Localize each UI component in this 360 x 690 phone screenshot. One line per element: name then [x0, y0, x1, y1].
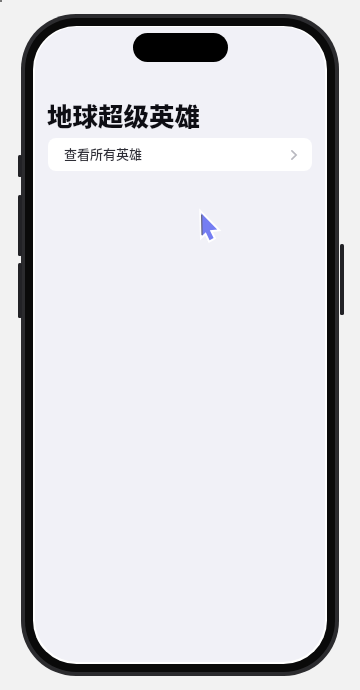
other: Action button [18, 155, 22, 177]
other: Volume up [18, 195, 22, 256]
staticText: 查看所有英雄 [64, 144, 291, 163]
other: Power [340, 244, 344, 315]
staticText: 地球超级英雄 [47, 96, 201, 133]
button[interactable]: 查看所有英雄 [48, 138, 312, 171]
other: Volume down [18, 263, 22, 318]
